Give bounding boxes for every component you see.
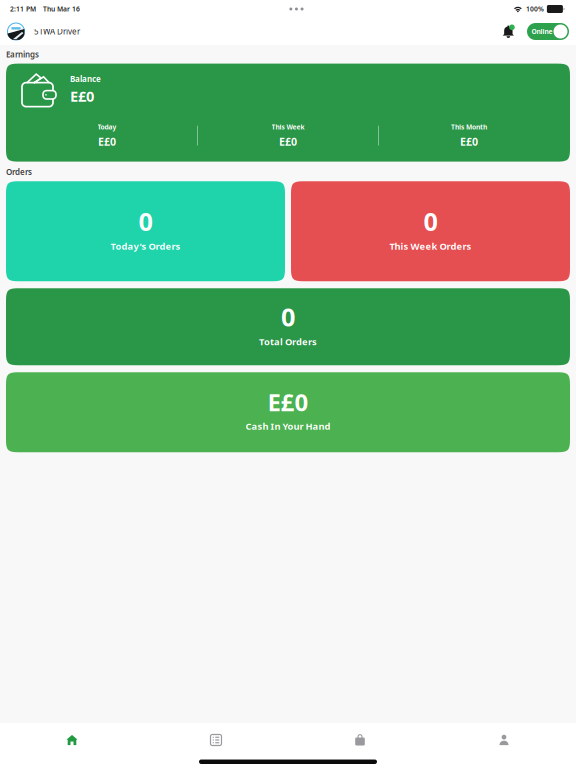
staticText: E£0: [267, 386, 308, 418]
staticText: Cash In Your Hand: [245, 420, 330, 432]
staticText: 2:11 PM: [10, 5, 36, 13]
staticText: This Week Orders: [389, 240, 471, 252]
staticText: Today: [97, 123, 116, 131]
staticText: Earnings: [6, 49, 39, 60]
staticText: 5TWA Driver: [34, 26, 80, 37]
staticText: Online: [531, 27, 552, 36]
button[interactable]: Notifications: [495, 20, 522, 42]
staticText: 0: [281, 300, 295, 333]
staticText: Thu Mar 16: [43, 5, 80, 13]
staticText: Balance: [70, 74, 101, 84]
button[interactable]: 0: [6, 181, 285, 281]
staticText: E£0: [460, 134, 478, 149]
staticText: 100%: [526, 5, 544, 13]
button[interactable]: Home: [0, 729, 144, 751]
button[interactable]: 0: [291, 181, 570, 281]
button[interactable]: 0: [6, 288, 570, 365]
staticText: 0: [138, 204, 152, 238]
button[interactable]: Online: [522, 23, 569, 40]
staticText: This Week: [271, 123, 304, 131]
staticText: Today's Orders: [110, 240, 180, 252]
staticText: 0: [423, 204, 437, 238]
button[interactable]: E£0: [6, 372, 570, 452]
staticText: This Month: [451, 123, 487, 131]
staticText: Orders: [6, 167, 32, 177]
button[interactable]: Orders: [144, 729, 288, 751]
staticText: E£0: [279, 134, 297, 149]
staticText: Total Orders: [259, 335, 317, 348]
staticText: E£0: [70, 86, 94, 106]
staticText: E£0: [98, 134, 116, 149]
button[interactable]: Shop: [288, 729, 432, 751]
button[interactable]: Profile: [432, 729, 576, 751]
